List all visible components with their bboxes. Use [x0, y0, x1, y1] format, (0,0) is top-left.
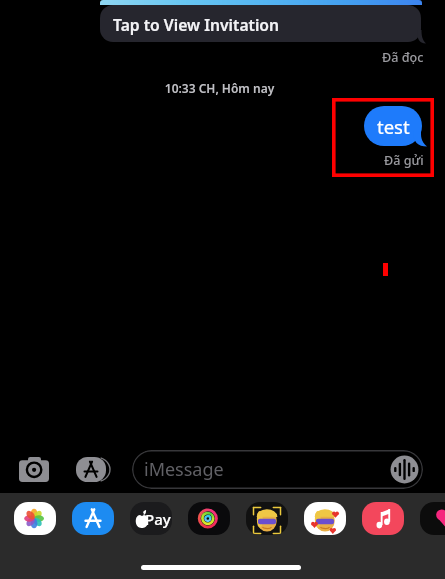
button[interactable]: Activity: [188, 502, 230, 535]
staticText: Tap to View Invitation: [113, 14, 280, 35]
button[interactable]: App Store: [72, 502, 114, 535]
button[interactable]: Take photo: [19, 457, 49, 482]
staticText: Pay: [145, 509, 171, 529]
button[interactable]: Digital Touch: [420, 502, 445, 535]
staticText: iMessage: [144, 457, 224, 482]
button[interactable]: Music: [362, 502, 404, 535]
staticText: test: [377, 114, 410, 139]
button[interactable]: iMessage: [132, 450, 423, 489]
staticText: Đã gửi: [384, 152, 424, 169]
button[interactable]: Memoji sticker: [304, 502, 346, 535]
button[interactable]: Apple Pay: [130, 502, 172, 535]
button[interactable]: Memoji: [246, 502, 288, 535]
button[interactable]: Photos: [14, 502, 56, 535]
button[interactable]: Tap to View Invitation: [100, 5, 426, 43]
button[interactable]: App Store: [76, 457, 110, 482]
staticText: Đã đọc: [382, 49, 424, 66]
staticText: 10:33 CH, Hôm nay: [0, 80, 442, 96]
button[interactable]: test: [364, 106, 427, 146]
